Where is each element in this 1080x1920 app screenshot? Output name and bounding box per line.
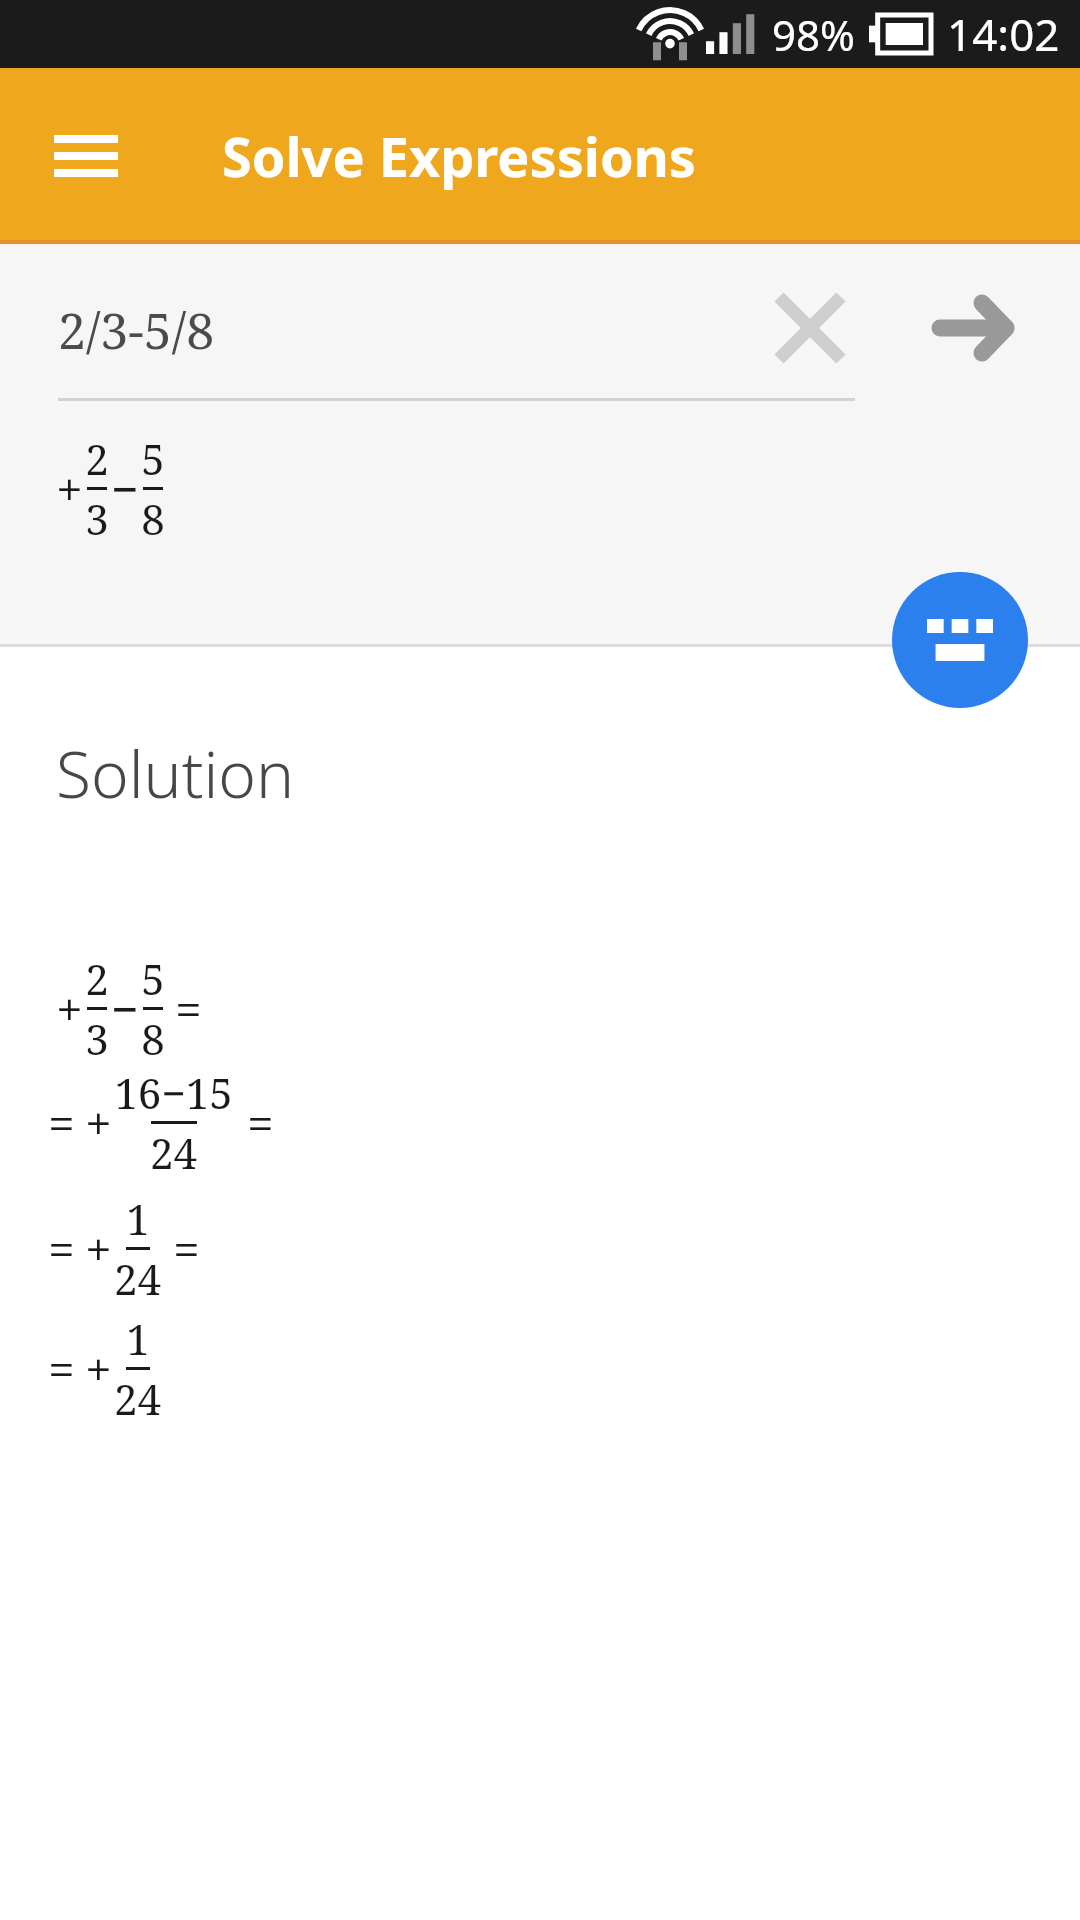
staticText: − [111,456,139,521]
staticText: 1 [126,1190,150,1247]
staticText: 2 [85,430,109,487]
staticText: 2/3-5/8 [58,296,215,364]
button[interactable]: Solve expression [920,274,1028,382]
button[interactable]: Open navigation drawer [30,100,142,212]
staticText: 24 [150,1124,197,1181]
staticText: 1 [126,1310,150,1367]
staticText: 3 [85,490,109,547]
staticText: = [173,1216,200,1281]
staticText: + [56,976,83,1041]
staticText: + [85,1336,112,1401]
staticText: 3 [85,1010,109,1067]
staticText: 5 [141,950,165,1007]
staticText: = [247,1090,274,1155]
staticText: = [48,1090,75,1155]
staticText: 24 [114,1370,161,1427]
staticText: Solution [56,730,295,817]
staticText: 8 [141,1010,165,1067]
button[interactable]: Show math keyboard [892,572,1028,708]
staticText: − [111,976,139,1041]
staticText: Solve Expressions [222,119,696,193]
staticText: = [175,976,202,1041]
staticText: = [48,1216,75,1281]
staticText: = [48,1336,75,1401]
staticText: 8 [141,490,165,547]
staticText: 5 [141,430,165,487]
staticText: 2 [85,950,109,1007]
button[interactable]: Clear expression [756,274,864,382]
staticText: + [85,1216,112,1281]
staticText: 16−15 [114,1064,233,1121]
staticText: 24 [114,1250,161,1307]
staticText: + [56,456,83,521]
staticText: + [85,1090,112,1155]
staticText: 98% [772,6,855,63]
staticText: 14:02 [947,4,1060,64]
